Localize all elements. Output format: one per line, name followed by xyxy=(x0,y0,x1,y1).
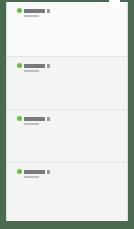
button[interactable] xyxy=(6,163,128,215)
button[interactable] xyxy=(6,57,128,109)
button[interactable] xyxy=(6,2,128,56)
button[interactable] xyxy=(6,110,128,162)
